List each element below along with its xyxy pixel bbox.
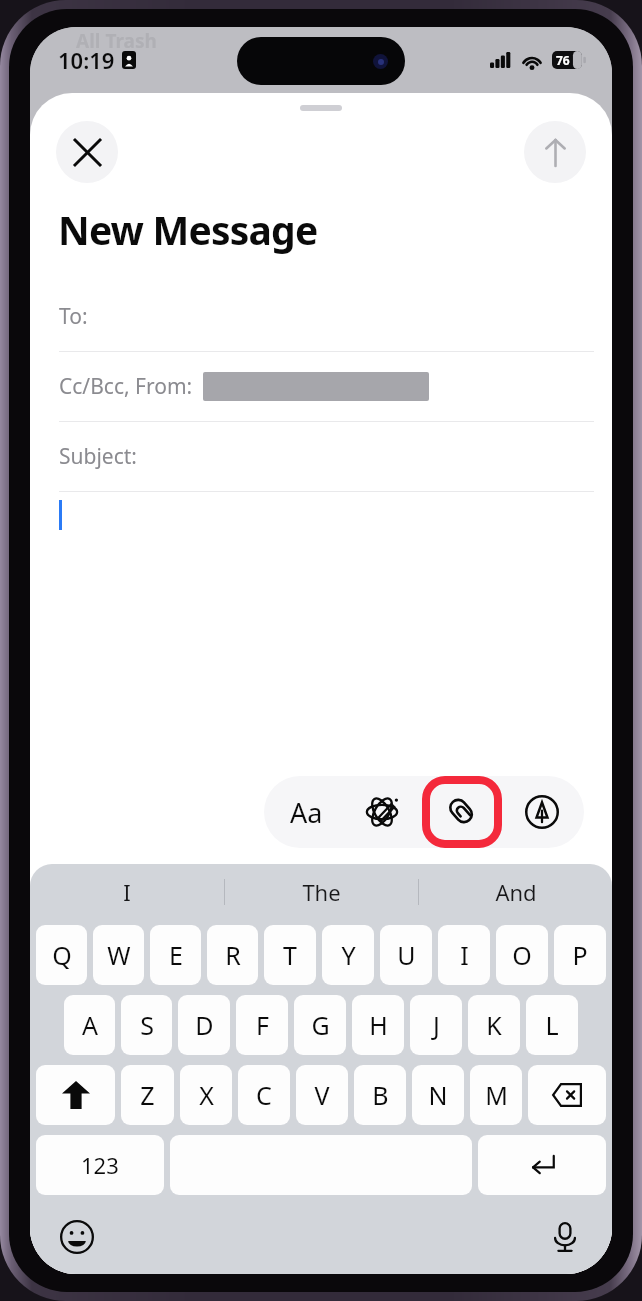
button[interactable]: Writing Tools [344,776,420,848]
staticText: Y [341,938,356,972]
button[interactable]: Cc/Bcc, From: [30,352,612,421]
staticText: 123 [81,1150,119,1180]
button[interactable]: I [30,864,224,920]
staticText: P [572,938,588,972]
staticText: Cc/Bcc, From: [59,372,193,401]
staticText: 76 [556,52,570,68]
button[interactable]: To: [30,282,612,351]
staticText: I [460,938,469,972]
button[interactable]: G [294,995,346,1055]
staticText: J [433,1008,440,1042]
staticText: The [302,877,341,907]
staticText: C [256,1078,272,1112]
button[interactable]: M [470,1065,522,1125]
button[interactable]: E [150,925,201,985]
button[interactable]: I [438,925,490,985]
staticText: O [512,938,532,972]
staticText: M [485,1078,508,1112]
button[interactable]: Q [36,925,87,985]
button[interactable]: C [238,1065,290,1125]
button[interactable]: U [380,925,432,985]
staticText: H [369,1008,388,1042]
staticText: B [372,1078,389,1112]
staticText: Aa [290,794,323,831]
staticText: G [311,1008,330,1042]
button[interactable]: V [296,1065,348,1125]
button[interactable]: K [468,995,520,1055]
button[interactable]: O [496,925,548,985]
staticText: T [283,938,297,972]
button[interactable]: Dictation [538,1210,592,1264]
button[interactable]: N [412,1065,464,1125]
staticText: S [140,1008,154,1042]
button[interactable]: P [554,925,606,985]
button[interactable]: J [410,995,462,1055]
button[interactable]: H [352,995,404,1055]
button[interactable]: R [207,925,258,985]
staticText: Q [52,938,72,972]
staticText: Z [140,1078,155,1112]
button[interactable]: W [93,925,144,985]
button[interactable]: And [419,864,612,920]
button[interactable]: X [180,1065,232,1125]
staticText: X [199,1078,214,1112]
button[interactable]: Markup [504,776,580,848]
staticText: E [169,938,183,972]
staticText: Subject: [59,442,137,471]
button[interactable]: B [354,1065,406,1125]
staticText: I [123,877,131,907]
button[interactable]: Format [268,776,344,848]
button[interactable]: Z [121,1065,174,1125]
button[interactable]: L [526,995,578,1055]
staticText: K [486,1008,502,1042]
button[interactable]: Subject: [30,422,612,491]
staticText: 10:19 [58,45,115,75]
staticText: R [225,938,241,972]
staticText: A [82,1008,98,1042]
button[interactable]: The [225,864,418,920]
button[interactable]: Close [56,121,118,183]
button[interactable]: T [264,925,316,985]
staticText: U [397,938,416,972]
button[interactable]: 123 [36,1135,164,1195]
staticText: D [195,1008,214,1042]
button[interactable]: Backspace [528,1065,606,1125]
button[interactable]: Return [478,1135,606,1195]
staticText: And [495,877,537,907]
button[interactable]: Emoji [50,1210,104,1264]
button[interactable]: Y [322,925,374,985]
button[interactable]: Attach file [420,776,504,848]
staticText: W [107,938,131,972]
button[interactable]: S [121,995,172,1055]
button[interactable]: Send [524,121,586,183]
button[interactable]: F [236,995,288,1055]
staticText: All Trash [76,28,157,54]
button[interactable]: Shift [36,1065,115,1125]
staticText: V [314,1078,330,1112]
button[interactable]: A [64,995,115,1055]
staticText: F [256,1008,269,1042]
staticText: L [545,1008,559,1042]
staticText: N [428,1078,448,1112]
staticText: New Message [58,203,318,256]
staticText: To: [59,302,88,331]
button[interactable]: D [178,995,230,1055]
